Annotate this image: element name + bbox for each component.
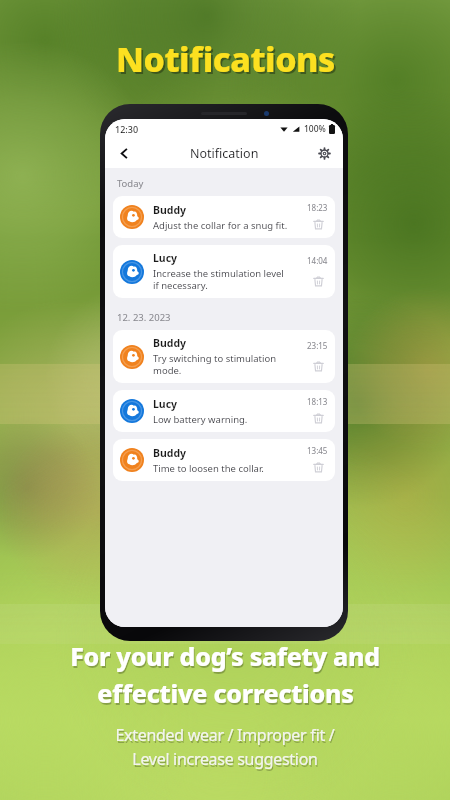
button[interactable]: Delete [310, 410, 326, 426]
staticText: 18:23 [307, 202, 328, 213]
button[interactable]: Delete [310, 216, 326, 232]
button[interactable]: Buddy [113, 196, 335, 238]
staticText: Time to loosen the collar. [153, 462, 264, 475]
staticText: Increase the stimulation level if necess… [153, 267, 284, 292]
button[interactable]: Lucy [113, 245, 335, 298]
button[interactable]: Lucy [113, 390, 335, 432]
staticText: 14:04 [307, 255, 328, 266]
staticText: 100% [304, 123, 326, 135]
staticText: Today [117, 177, 144, 190]
staticText: Adjust the collar for a snug fit. [153, 219, 288, 232]
staticText: Notification [190, 145, 259, 162]
button[interactable]: Delete [310, 358, 326, 374]
staticText: Extended wear / Improper fit / [115, 724, 335, 746]
staticText: Extended wear / Improper fit / [116, 726, 336, 748]
staticText: Level increase suggestion [132, 748, 318, 770]
staticText: 23:15 [307, 340, 328, 351]
staticText: 18:13 [307, 396, 328, 407]
staticText: Buddy [153, 336, 187, 350]
staticText: 12. 23. 2023 [117, 311, 171, 324]
staticText: Try switching to stimulation mode. [153, 352, 277, 377]
button[interactable]: Back [111, 140, 137, 166]
staticText: Notifications [118, 38, 337, 84]
staticText: effective corrections [97, 676, 354, 710]
staticText: Lucy [153, 397, 178, 411]
button[interactable]: Delete [310, 459, 326, 475]
staticText: Level increase suggestion [133, 750, 319, 772]
button[interactable]: Buddy [113, 330, 335, 383]
staticText: For your dog’s safety and [71, 641, 381, 675]
staticText: 13:45 [307, 445, 328, 456]
button[interactable]: Settings [311, 140, 337, 166]
staticText: Notifications [116, 36, 335, 82]
staticText: effective corrections [98, 678, 355, 712]
staticText: Low battery warning. [153, 413, 248, 426]
staticText: 12:30 [115, 123, 139, 135]
staticText: For your dog’s safety and [70, 639, 380, 673]
staticText: Buddy [153, 446, 187, 460]
staticText: Buddy [153, 203, 187, 217]
button[interactable]: Buddy [113, 439, 335, 481]
button[interactable]: Delete [310, 273, 326, 289]
staticText: Lucy [153, 251, 178, 265]
